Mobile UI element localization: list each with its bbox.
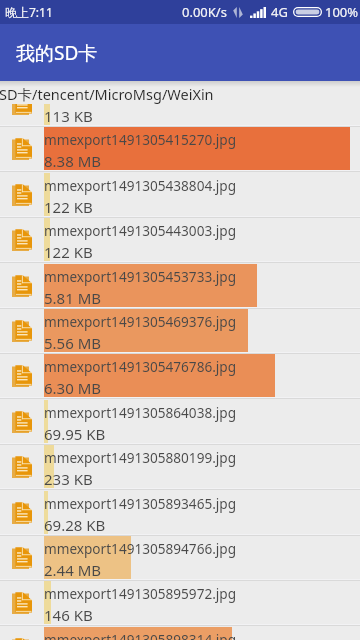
button[interactable]: mmexport1491305415270.jpg (0, 127, 360, 172)
staticText: 0.00K/s (182, 3, 227, 21)
staticText: mmexport1491305893465.jpg (44, 494, 237, 513)
staticText: mmexport1491305443003.jpg (44, 221, 237, 240)
button[interactable]: mmexport1491305469376.jpg (0, 309, 360, 354)
button[interactable]: mmexport1491305412345.jpg (0, 82, 360, 127)
other: Signal (250, 7, 266, 18)
staticText: mmexport1491305469376.jpg (44, 312, 237, 331)
staticText: 100% (325, 3, 359, 21)
staticText: 146 KB (44, 605, 93, 625)
staticText: 2.44 MB (44, 560, 102, 580)
staticText: mmexport1491305898314.jpg (44, 630, 237, 640)
staticText: mmexport1491305880199.jpg (44, 448, 237, 467)
staticText: mmexport1491305412345.jpg (44, 85, 237, 104)
button[interactable]: mmexport1491305476786.jpg (0, 354, 360, 399)
staticText: 122 KB (44, 197, 93, 217)
staticText: mmexport1491305894766.jpg (44, 539, 237, 558)
staticText: 113 KB (44, 106, 93, 126)
staticText: 8.38 MB (44, 151, 102, 171)
staticText: 4G (271, 3, 288, 21)
button[interactable]: mmexport1491305443003.jpg (0, 218, 360, 263)
staticText: 我的SD卡 (16, 40, 98, 66)
button[interactable]: mmexport1491305880199.jpg (0, 445, 360, 490)
staticText: mmexport1491305438804.jpg (44, 176, 237, 195)
staticText: 5.56 MB (44, 333, 102, 353)
staticText: 233 KB (44, 469, 93, 489)
button[interactable]: mmexport1491305893465.jpg (0, 491, 360, 536)
staticText: SD卡/tencent/MicroMsg/WeiXin (0, 84, 214, 104)
staticText: 5.81 MB (44, 288, 102, 308)
other: Data transfer (233, 7, 243, 18)
button[interactable]: mmexport1491305453733.jpg (0, 264, 360, 309)
staticText: 69.95 KB (44, 424, 106, 444)
button[interactable]: mmexport1491305898314.jpg (0, 627, 360, 640)
staticText: mmexport1491305864038.jpg (44, 403, 237, 422)
staticText: mmexport1491305453733.jpg (44, 267, 237, 286)
button[interactable]: mmexport1491305864038.jpg (0, 400, 360, 445)
staticText: mmexport1491305476786.jpg (44, 357, 237, 376)
staticText: 6.30 MB (44, 378, 102, 398)
staticText: mmexport1491305415270.jpg (44, 130, 237, 149)
button[interactable]: mmexport1491305895972.jpg (0, 581, 360, 626)
other: Battery (293, 7, 322, 17)
staticText: 晚上7:11 (5, 4, 53, 20)
button[interactable]: mmexport1491305438804.jpg (0, 173, 360, 218)
staticText: mmexport1491305895972.jpg (44, 584, 237, 603)
button[interactable]: mmexport1491305894766.jpg (0, 536, 360, 581)
staticText: 69.28 KB (44, 515, 106, 535)
staticText: 122 KB (44, 242, 93, 262)
button[interactable]: SD卡/tencent/MicroMsg/WeiXin (0, 81, 360, 104)
